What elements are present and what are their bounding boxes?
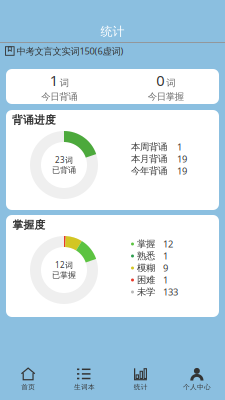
staticText: 9	[163, 262, 168, 274]
staticText: 19	[177, 165, 187, 177]
staticText: 词	[60, 77, 69, 89]
staticText: 0	[156, 70, 164, 90]
staticText: 12词	[55, 260, 73, 270]
button[interactable]: 生词本	[56, 361, 112, 397]
staticText: 困难	[137, 274, 155, 286]
staticText: 今日背诵	[41, 91, 77, 102]
staticText: 模糊	[137, 262, 155, 274]
staticText: 掌握	[137, 238, 155, 250]
staticText: 统计	[134, 383, 148, 391]
staticText: 今日掌握	[148, 91, 184, 102]
staticText: 背诵进度	[12, 113, 56, 126]
staticText: 12	[163, 238, 173, 250]
staticText: 133	[163, 286, 178, 298]
staticText: 1	[177, 141, 182, 153]
button[interactable]: 中考文言文实词150(6虚词)	[0, 42, 225, 60]
staticText: 熟悉	[137, 250, 155, 262]
staticText: 已掌握	[52, 270, 76, 280]
staticText: 本周背诵	[131, 141, 167, 153]
staticText: 未学	[137, 286, 155, 298]
staticText: 个人中心	[183, 383, 211, 391]
staticText: 1	[50, 70, 58, 90]
staticText: 19	[177, 153, 187, 165]
staticText: 词	[166, 77, 175, 89]
staticText: 中考文言文实词150(6虚词)	[17, 45, 124, 57]
staticText: 今年背诵	[131, 165, 167, 177]
staticText: 1	[163, 250, 168, 262]
staticText: 掌握度	[12, 218, 45, 231]
button[interactable]: 个人中心	[169, 361, 225, 397]
staticText: 统计	[100, 24, 124, 39]
staticText: 已背诵	[52, 165, 76, 175]
staticText: 首页	[21, 383, 35, 391]
button[interactable]: 首页	[0, 361, 56, 397]
staticText: 1	[163, 274, 168, 286]
staticText: 23词	[55, 155, 73, 165]
staticText: 生词本	[74, 383, 95, 391]
staticText: 本月背诵	[131, 153, 167, 165]
button[interactable]: 统计	[112, 361, 169, 397]
